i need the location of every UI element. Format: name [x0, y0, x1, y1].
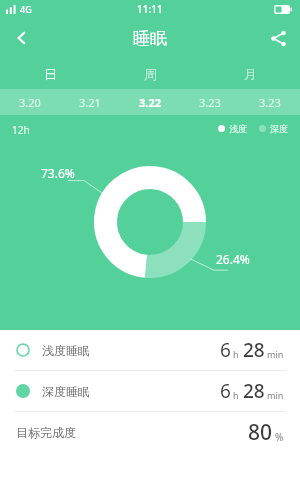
staticText: 6: [220, 337, 231, 363]
staticText: 深度: [270, 123, 288, 134]
button[interactable]: 周: [100, 58, 200, 89]
staticText: %: [275, 430, 284, 444]
staticText: 月: [244, 66, 257, 82]
button[interactable]: 3.23: [180, 89, 240, 115]
staticText: 睡眠: [133, 28, 167, 49]
staticText: h: [233, 348, 239, 360]
button[interactable]: 月: [200, 58, 300, 89]
staticText: 3.23: [259, 95, 281, 110]
staticText: 4G: [20, 3, 32, 15]
staticText: 11:11: [137, 2, 163, 16]
staticText: min: [267, 389, 284, 401]
staticText: h: [233, 389, 239, 401]
staticText: 日: [44, 66, 57, 82]
button[interactable]: 3.23: [240, 89, 300, 115]
button[interactable]: 3.22: [120, 89, 180, 115]
staticText: min: [267, 348, 284, 360]
staticText: 80: [248, 418, 273, 447]
staticText: 3.23: [199, 95, 221, 110]
staticText: 浅度: [229, 123, 247, 134]
staticText: 浅度睡眠: [42, 343, 90, 358]
button[interactable]: Back: [0, 18, 44, 58]
button[interactable]: 深度睡眠: [0, 371, 300, 411]
staticText: 28: [243, 378, 265, 404]
staticText: 12h: [12, 123, 30, 137]
button[interactable]: 目标完成度: [0, 412, 300, 452]
staticText: 73.6%: [41, 165, 75, 181]
staticText: 深度睡眠: [42, 384, 90, 399]
button[interactable]: 3.21: [60, 89, 120, 115]
staticText: 28: [243, 337, 265, 363]
staticText: 6: [220, 378, 231, 404]
button[interactable]: 浅度睡眠: [0, 330, 300, 370]
button[interactable]: Share: [256, 18, 300, 58]
staticText: 3.21: [79, 95, 101, 110]
button[interactable]: 日: [0, 58, 100, 89]
staticText: 目标完成度: [16, 425, 76, 440]
staticText: 26.4%: [216, 251, 250, 267]
button[interactable]: 3.20: [0, 89, 60, 115]
staticText: 周: [144, 66, 157, 82]
staticText: 3.22: [139, 95, 161, 110]
staticText: 3.20: [19, 95, 41, 110]
